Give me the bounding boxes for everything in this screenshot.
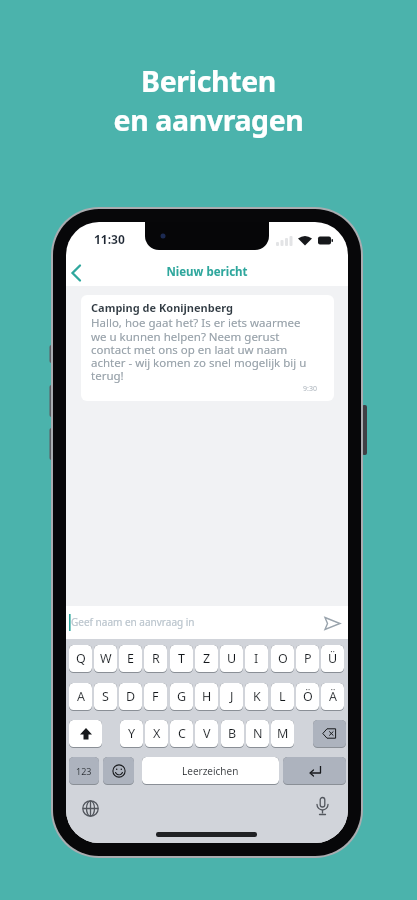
staticText: Camping de Konijnenberg: [91, 300, 233, 315]
button[interactable]: U: [220, 645, 243, 673]
button[interactable]: Ä: [321, 683, 344, 711]
button[interactable]: K: [245, 683, 268, 711]
staticText: Geef naam en aanvraag in: [71, 615, 195, 629]
button[interactable]: C: [170, 720, 193, 748]
staticText: U: [227, 650, 237, 667]
staticText: V: [203, 725, 211, 742]
button[interactable]: T: [170, 645, 193, 673]
staticText: 9:30: [303, 384, 317, 394]
staticText: Nieuw bericht: [66, 264, 348, 280]
button[interactable]: S: [94, 683, 117, 711]
button[interactable]: X: [145, 720, 168, 748]
button[interactable]: Ü: [321, 645, 344, 673]
button[interactable]: Leerzeichen: [142, 757, 279, 785]
button[interactable]: [69, 720, 102, 748]
button[interactable]: V: [195, 720, 218, 748]
staticText: Hallo, hoe gaat het? Is er iets waarmee …: [91, 315, 307, 383]
button[interactable]: [313, 720, 346, 748]
staticText: A: [77, 688, 85, 705]
staticText: T: [178, 650, 185, 667]
button[interactable]: Geef naam en aanvraag in: [66, 606, 348, 639]
button[interactable]: Q: [69, 645, 92, 673]
button[interactable]: G: [170, 683, 193, 711]
button[interactable]: N: [246, 720, 269, 748]
staticText: G: [177, 688, 187, 705]
button[interactable]: E: [119, 645, 142, 673]
button[interactable]: 123: [69, 757, 99, 785]
staticText: I: [254, 650, 259, 667]
button[interactable]: [283, 757, 346, 785]
staticText: 123: [76, 765, 92, 777]
staticText: Z: [203, 650, 211, 667]
button[interactable]: W: [94, 645, 117, 673]
staticText: X: [153, 725, 161, 742]
button[interactable]: Camping de Konijnenberg: [81, 295, 334, 401]
button[interactable]: O: [271, 645, 294, 673]
button[interactable]: [103, 757, 134, 785]
staticText: M: [277, 725, 289, 742]
staticText: F: [152, 688, 159, 705]
button[interactable]: Z: [195, 645, 218, 673]
staticText: R: [152, 650, 160, 667]
button[interactable]: A: [69, 683, 92, 711]
staticText: Y: [128, 725, 136, 742]
button[interactable]: M: [271, 720, 294, 748]
button[interactable]: L: [271, 683, 294, 711]
staticText: J: [230, 688, 234, 705]
button[interactable]: B: [221, 720, 244, 748]
staticText: Ä: [329, 688, 337, 705]
staticText: L: [279, 688, 286, 705]
staticText: O: [278, 650, 288, 667]
staticText: P: [304, 650, 312, 667]
button[interactable]: H: [195, 683, 218, 711]
staticText: H: [202, 688, 212, 705]
staticText: D: [126, 688, 136, 705]
button[interactable]: J: [220, 683, 243, 711]
button[interactable]: Ö: [296, 683, 319, 711]
button[interactable]: [74, 792, 106, 824]
staticText: Q: [76, 650, 86, 667]
staticText: N: [253, 725, 263, 742]
staticText: E: [127, 650, 134, 667]
button[interactable]: [318, 609, 346, 637]
staticText: 11:30: [94, 231, 125, 247]
staticText: Ö: [303, 688, 313, 705]
staticText: K: [253, 688, 261, 705]
button[interactable]: R: [144, 645, 167, 673]
staticText: Ü: [328, 650, 338, 667]
button[interactable]: Y: [120, 720, 143, 748]
button[interactable]: [306, 790, 338, 824]
staticText: Berichten en aanvragen: [0, 62, 417, 139]
staticText: W: [100, 650, 112, 667]
staticText: B: [228, 725, 237, 742]
staticText: Leerzeichen: [182, 764, 239, 778]
button[interactable]: [68, 262, 86, 284]
button[interactable]: F: [144, 683, 167, 711]
button[interactable]: D: [119, 683, 142, 711]
button[interactable]: P: [296, 645, 319, 673]
staticText: S: [102, 688, 109, 705]
button[interactable]: I: [245, 645, 268, 673]
staticText: C: [178, 725, 186, 742]
